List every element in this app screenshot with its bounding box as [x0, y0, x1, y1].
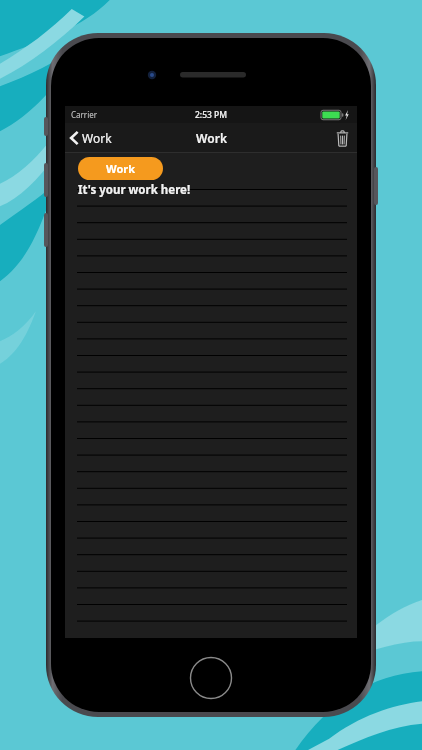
button[interactable]: Work: [78, 157, 163, 180]
button[interactable]: Work: [65, 126, 120, 150]
staticText: Work: [196, 130, 227, 146]
staticText: Carrier: [71, 109, 98, 120]
staticText: It's your work here!: [78, 182, 191, 198]
button[interactable]: Delete: [328, 126, 357, 151]
staticText: Work: [106, 161, 136, 176]
staticText: 2:53 PM: [195, 109, 228, 121]
staticText: Work: [82, 130, 112, 146]
button[interactable]: Home: [189, 656, 233, 700]
